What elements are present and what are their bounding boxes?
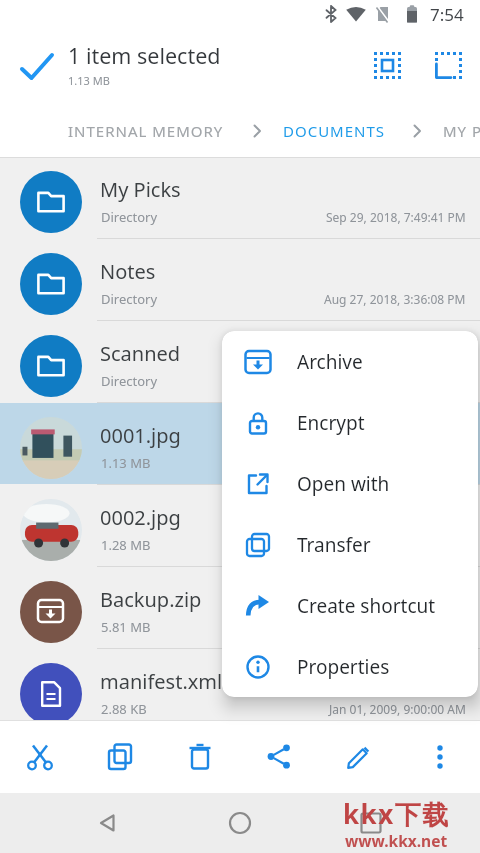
button[interactable]: DOCUMENTS [283, 121, 386, 141]
button[interactable]: My Picks [0, 157, 480, 238]
button[interactable]: Transfer [222, 514, 478, 575]
staticText: Transfer [297, 532, 371, 558]
staticText: Encrypt [297, 410, 365, 436]
button[interactable]: Open with [222, 453, 478, 514]
button[interactable]: manifest.xml [0, 649, 480, 720]
staticText: Properties [297, 654, 390, 680]
staticText: Create shortcut [297, 593, 436, 619]
button[interactable] [435, 52, 465, 82]
staticText: 1.13 MB [101, 454, 151, 472]
button[interactable]: Properties [222, 636, 478, 697]
staticText: 1 item selected [68, 41, 221, 70]
button[interactable] [176, 733, 224, 781]
button[interactable] [218, 801, 262, 845]
staticText: Sep 29, 2018, 7:49:41 PM [326, 209, 466, 225]
staticText: Directory [101, 208, 158, 226]
staticText: Open with [297, 471, 390, 497]
staticText: Jan 01, 2009, 9:00:00 AM [329, 701, 466, 717]
button[interactable] [349, 801, 393, 845]
staticText: 0001.jpg [100, 422, 181, 449]
staticText: 1.28 MB [101, 536, 151, 554]
button[interactable]: Scanned [0, 321, 480, 402]
staticText: Directory [101, 290, 158, 308]
staticText: Backup.zip [100, 586, 202, 613]
staticText: Directory [101, 372, 158, 390]
staticText: Aug 27, 2018, 3:36:08 PM [324, 291, 466, 307]
staticText: www.kkx.net [345, 830, 448, 851]
button[interactable]: INTERNAL MEMORY [68, 121, 224, 141]
staticText: manifest.xml [100, 668, 223, 695]
staticText: 1.13 MB [68, 73, 110, 88]
button[interactable] [255, 733, 303, 781]
button[interactable]: Create shortcut [222, 575, 478, 636]
staticText: Scanned [100, 340, 181, 367]
button[interactable] [18, 48, 58, 88]
button[interactable] [416, 733, 464, 781]
staticText: 7:54 [430, 3, 464, 26]
button[interactable] [335, 733, 383, 781]
staticText: 0002.jpg [100, 504, 181, 531]
button[interactable]: MY PICKS [443, 121, 480, 141]
button[interactable]: 0002.jpg [0, 485, 480, 566]
staticText: My Picks [100, 176, 181, 203]
staticText: kkx下载 [343, 796, 450, 832]
staticText: Archive [297, 349, 363, 375]
button[interactable]: Encrypt [222, 392, 478, 453]
button[interactable] [374, 52, 404, 82]
button[interactable] [16, 733, 64, 781]
staticText: 5.81 MB [101, 618, 151, 636]
staticText: Notes [100, 258, 156, 285]
button[interactable] [96, 733, 144, 781]
button[interactable]: 0001.jpg [0, 403, 480, 484]
button[interactable]: Notes [0, 239, 480, 320]
button[interactable]: Backup.zip [0, 567, 480, 648]
button[interactable]: Archive [222, 331, 478, 392]
staticText: 2.88 KB [101, 700, 147, 718]
button[interactable] [86, 801, 130, 845]
